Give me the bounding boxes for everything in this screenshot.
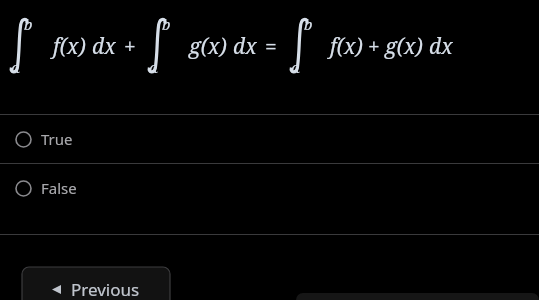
button[interactable]: False <box>0 164 539 212</box>
staticText: dx <box>429 32 453 61</box>
staticText: a <box>291 57 300 77</box>
staticText: g(x) <box>189 32 227 61</box>
staticText: False <box>41 178 77 198</box>
staticText: g(x) <box>385 32 423 61</box>
staticText: a <box>11 57 20 77</box>
staticText: b <box>304 14 313 34</box>
staticText: + <box>124 32 136 61</box>
staticText: + <box>368 32 380 61</box>
button[interactable]: Previous <box>22 267 170 300</box>
staticText: a <box>149 57 158 77</box>
staticText: b <box>24 14 33 34</box>
staticText: dx <box>92 32 116 61</box>
staticText: Previous <box>71 278 140 300</box>
staticText: f(x) <box>53 32 86 61</box>
staticText: f(x) <box>330 32 363 61</box>
button[interactable]: True <box>0 115 539 163</box>
staticText: b <box>162 14 171 34</box>
staticText: = <box>265 32 277 61</box>
staticText: True <box>41 129 73 149</box>
staticText: dx <box>233 32 257 61</box>
